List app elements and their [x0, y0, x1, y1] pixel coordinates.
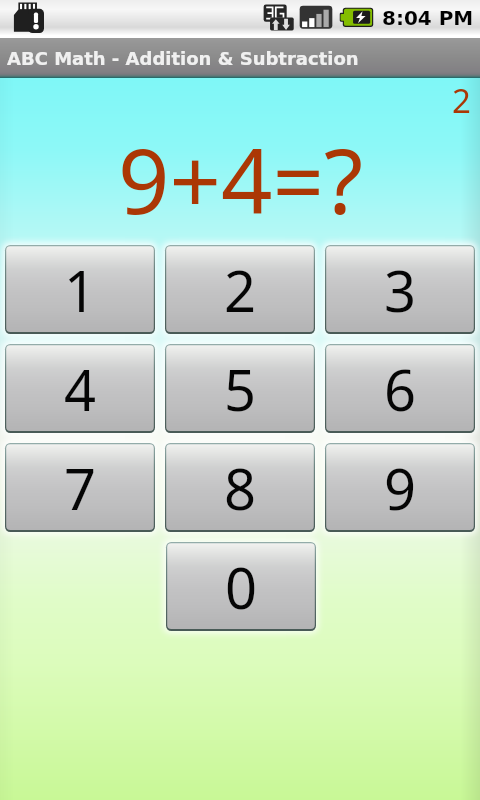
staticText: 2 [224, 252, 257, 328]
button[interactable]: 5 [165, 344, 315, 433]
staticText: 7 [64, 450, 97, 526]
button[interactable]: 6 [325, 344, 475, 433]
staticText: 0 [225, 549, 258, 625]
staticText: 8 [224, 450, 257, 526]
staticText: 5 [224, 351, 257, 427]
staticText: 3 [384, 252, 417, 328]
staticText: 9+4=? [118, 118, 363, 241]
staticText: 8:04 PM [382, 6, 474, 29]
staticText: ABC Math - Addition & Subtraction [7, 48, 359, 69]
button[interactable]: 3 [325, 245, 475, 334]
staticText: 9 [384, 450, 417, 526]
button[interactable]: 4 [5, 344, 155, 433]
staticText: 6 [384, 351, 417, 427]
button[interactable]: 1 [5, 245, 155, 334]
staticText: 4 [64, 351, 97, 427]
button[interactable]: 0 [166, 542, 316, 631]
staticText: 2 [452, 78, 471, 123]
button[interactable]: 2 [165, 245, 315, 334]
button[interactable]: 9 [325, 443, 475, 532]
button[interactable]: 7 [5, 443, 155, 532]
button[interactable]: 8 [165, 443, 315, 532]
staticText: 1 [64, 252, 97, 328]
other: SD card [12, 2, 44, 33]
